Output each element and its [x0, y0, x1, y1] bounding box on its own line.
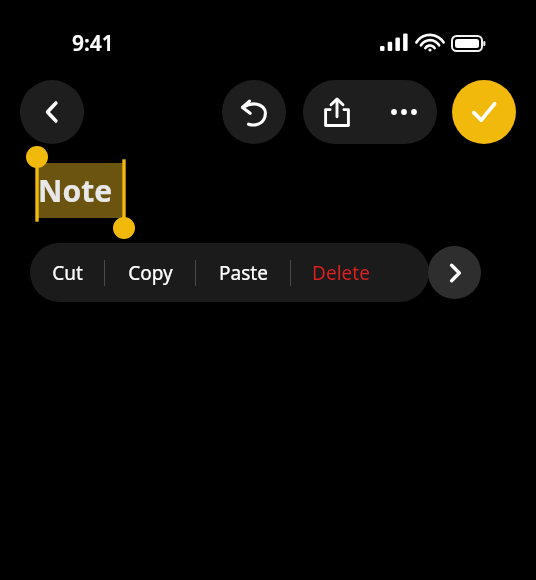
button[interactable]: Back [20, 80, 84, 144]
staticText: Copy [128, 260, 173, 286]
staticText: Cut [52, 260, 83, 286]
staticText: Delete [312, 260, 370, 286]
button[interactable]: Done [452, 80, 516, 144]
button[interactable]: More options [370, 80, 437, 144]
button[interactable]: Paste [196, 243, 290, 302]
button[interactable]: Cut [30, 243, 104, 302]
button[interactable]: Copy [105, 243, 195, 302]
staticText: Paste [219, 260, 268, 286]
staticText: Note [38, 170, 113, 211]
button[interactable]: Delete [291, 243, 391, 302]
staticText: 9:41 [72, 29, 114, 58]
button[interactable]: More actions [428, 246, 481, 299]
button[interactable]: Undo [222, 80, 286, 144]
button[interactable]: Note [37, 163, 124, 218]
button[interactable]: Share [303, 80, 370, 144]
